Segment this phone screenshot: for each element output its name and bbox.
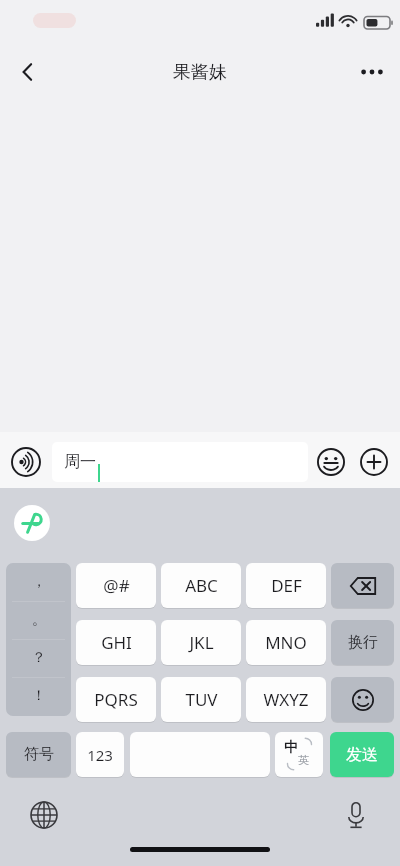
staticText: ！ <box>32 687 46 705</box>
button[interactable]: MNO <box>246 620 326 665</box>
button[interactable]: WXYZ <box>246 677 326 722</box>
button[interactable]: TUV <box>161 677 241 722</box>
button[interactable]: 123 <box>76 732 124 777</box>
button[interactable]: ， <box>6 563 71 601</box>
staticText: 果酱妹 <box>173 61 227 84</box>
button[interactable]: Emoji <box>313 444 349 480</box>
button[interactable]: DEF <box>246 563 326 608</box>
staticText: 中 <box>284 739 298 757</box>
button[interactable]: ！ <box>6 677 71 715</box>
staticText: ， <box>32 573 46 591</box>
button[interactable]: Voice typing <box>332 795 380 835</box>
staticText: TUV <box>185 688 218 711</box>
staticText: 发送 <box>346 745 378 765</box>
button[interactable]: 发送 <box>330 732 394 777</box>
button[interactable]: Back <box>4 50 52 94</box>
staticText: 符号 <box>24 745 54 764</box>
button[interactable]: 换行 <box>331 620 394 665</box>
button[interactable]: Switch language <box>20 795 68 835</box>
button[interactable]: @# <box>76 563 156 608</box>
button[interactable]: 。 <box>6 601 71 639</box>
staticText: ABC <box>185 574 218 597</box>
staticText: WXYZ <box>263 688 309 711</box>
button[interactable]: Space <box>130 732 270 777</box>
staticText: ？ <box>32 649 46 667</box>
staticText: @# <box>103 574 130 597</box>
button[interactable]: 周一 <box>52 442 308 482</box>
button[interactable]: ？ <box>6 639 71 677</box>
button[interactable]: JKL <box>161 620 241 665</box>
staticText: DEF <box>271 574 302 597</box>
button[interactable]: Voice input <box>8 444 44 480</box>
button[interactable]: GHI <box>76 620 156 665</box>
staticText: 123 <box>87 745 113 765</box>
staticText: 。 <box>32 611 46 629</box>
button[interactable]: Input method <box>14 505 50 541</box>
staticText: MNO <box>265 631 307 654</box>
staticText: 英 <box>298 753 309 767</box>
button[interactable]: Backspace <box>331 563 394 608</box>
button[interactable]: More options <box>348 50 396 94</box>
staticText: PQRS <box>94 688 138 711</box>
button[interactable]: Emoji keyboard <box>331 677 394 722</box>
button[interactable]: Chinese English toggle <box>275 732 323 777</box>
button[interactable]: 符号 <box>6 732 71 777</box>
staticText: GHI <box>101 631 132 654</box>
button[interactable]: More <box>356 444 392 480</box>
button[interactable]: ABC <box>161 563 241 608</box>
button[interactable]: PQRS <box>76 677 156 722</box>
staticText: 换行 <box>348 633 378 652</box>
staticText: 周一 <box>64 452 96 472</box>
staticText: JKL <box>189 631 214 654</box>
